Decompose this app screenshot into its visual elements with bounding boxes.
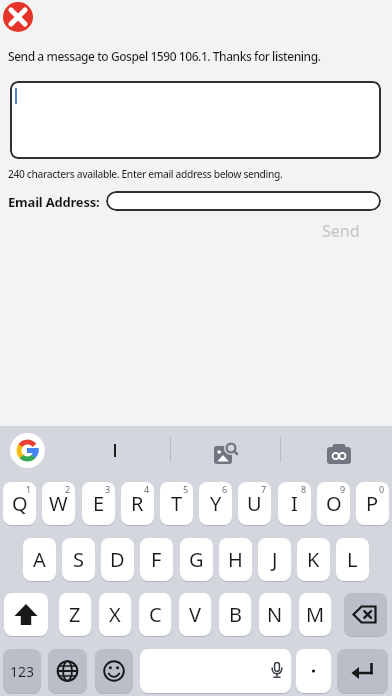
- button[interactable]: K: [297, 538, 330, 581]
- staticText: J: [272, 546, 278, 573]
- staticText: O: [326, 490, 342, 517]
- button[interactable]: H: [219, 538, 252, 581]
- button[interactable]: W: [42, 482, 75, 525]
- staticText: V: [189, 601, 201, 628]
- button[interactable]: J: [258, 538, 291, 581]
- button[interactable]: N: [259, 593, 291, 636]
- button[interactable]: T: [160, 482, 193, 525]
- button[interactable]: E: [82, 482, 115, 525]
- staticText: H: [228, 546, 243, 573]
- staticText: P: [366, 490, 379, 517]
- button[interactable]: B: [219, 593, 251, 636]
- button[interactable]: S: [62, 538, 95, 581]
- staticText: A: [33, 546, 46, 573]
- staticText: 0: [379, 483, 385, 495]
- button[interactable]: [337, 649, 388, 693]
- button[interactable]: V: [179, 593, 211, 636]
- button[interactable]: C: [139, 593, 171, 636]
- button[interactable]: [3, 2, 33, 32]
- button[interactable]: G: [180, 538, 213, 581]
- staticText: Q: [12, 490, 28, 517]
- button[interactable]: [10, 81, 381, 159]
- button[interactable]: R: [121, 482, 154, 525]
- staticText: N: [267, 601, 283, 628]
- staticText: 8: [301, 483, 307, 495]
- staticText: C: [149, 601, 162, 628]
- button[interactable]: L: [336, 538, 369, 581]
- staticText: M: [306, 601, 325, 628]
- button[interactable]: [95, 649, 133, 693]
- staticText: X: [109, 601, 121, 628]
- button[interactable]: O: [317, 482, 350, 525]
- staticText: 7: [261, 483, 267, 495]
- staticText: R: [131, 490, 144, 517]
- staticText: 4: [144, 483, 150, 495]
- staticText: 3: [105, 483, 111, 495]
- staticText: Send a message to Gospel 1590 106.1. Tha…: [8, 48, 321, 64]
- button[interactable]: [344, 593, 387, 636]
- staticText: Email Address:: [8, 193, 100, 211]
- staticText: F: [151, 546, 162, 573]
- button[interactable]: I: [278, 482, 311, 525]
- button[interactable]: [323, 438, 355, 470]
- staticText: T: [171, 490, 183, 517]
- staticText: U: [247, 490, 262, 517]
- staticText: Z: [69, 601, 81, 628]
- button[interactable]: [296, 649, 331, 693]
- staticText: L: [347, 546, 358, 573]
- staticText: 5: [183, 483, 189, 495]
- button[interactable]: [10, 433, 45, 468]
- button[interactable]: U: [238, 482, 271, 525]
- button[interactable]: [140, 649, 291, 693]
- staticText: B: [229, 601, 242, 628]
- staticText: G: [189, 546, 204, 573]
- button[interactable]: Z: [59, 593, 91, 636]
- button[interactable]: Send: [305, 216, 377, 246]
- staticText: K: [307, 546, 320, 573]
- staticText: 2: [65, 483, 71, 495]
- button[interactable]: F: [140, 538, 173, 581]
- button[interactable]: P: [356, 482, 389, 525]
- staticText: 1: [26, 483, 32, 495]
- staticText: 240 characters available. Enter email ad…: [8, 167, 283, 181]
- button[interactable]: [106, 191, 381, 211]
- button[interactable]: [4, 593, 48, 636]
- staticText: 6: [222, 483, 228, 495]
- staticText: S: [73, 546, 84, 573]
- button[interactable]: 123: [3, 649, 41, 693]
- staticText: W: [49, 490, 68, 517]
- button[interactable]: D: [101, 538, 134, 581]
- staticText: 123: [10, 662, 35, 681]
- button[interactable]: Y: [199, 482, 232, 525]
- staticText: I: [291, 490, 298, 517]
- button[interactable]: M: [299, 593, 331, 636]
- button[interactable]: [210, 438, 242, 470]
- button[interactable]: [48, 649, 87, 693]
- button[interactable]: X: [99, 593, 131, 636]
- button[interactable]: Q: [3, 482, 36, 525]
- staticText: Send: [322, 220, 360, 242]
- button[interactable]: A: [23, 538, 56, 581]
- staticText: 9: [340, 483, 346, 495]
- staticText: Y: [210, 490, 222, 517]
- staticText: D: [110, 546, 125, 573]
- staticText: E: [93, 490, 105, 517]
